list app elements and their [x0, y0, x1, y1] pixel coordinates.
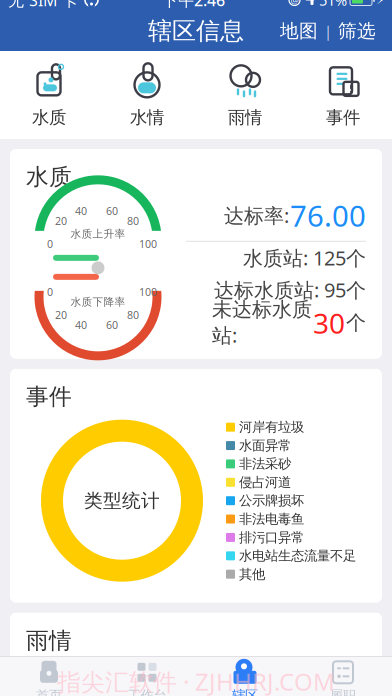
staticText: 事件	[26, 383, 72, 411]
staticText: ⚡︎	[376, 0, 384, 7]
staticText: 76.00	[290, 196, 366, 235]
staticText: 筛选	[338, 19, 376, 42]
staticText: 0	[47, 237, 53, 251]
staticText: 水质	[32, 107, 66, 128]
staticText: 个	[346, 310, 366, 335]
staticText: 水质站: 125个	[243, 244, 366, 271]
button[interactable]: 水质	[0, 51, 98, 139]
staticText: 100	[139, 237, 157, 251]
staticText: 雨情	[228, 107, 262, 128]
staticText: 80	[127, 308, 139, 322]
button[interactable]: 首页	[0, 656, 98, 696]
button[interactable]: 地图	[274, 13, 324, 48]
staticText: 非法电毒鱼	[239, 511, 304, 527]
staticText: 类型统计	[84, 489, 160, 512]
staticText: 51%	[319, 0, 347, 10]
staticText: 水电站生态流量不足	[239, 548, 356, 564]
staticText: 公示牌损坏	[239, 492, 304, 509]
staticText: 40	[75, 318, 87, 332]
staticText: 0	[47, 285, 53, 299]
staticText: 地图	[280, 19, 318, 42]
staticText: 40	[75, 204, 87, 218]
staticText: 水质上升率	[70, 227, 125, 240]
staticText: 无 SIM 卡	[8, 0, 78, 11]
staticText: 辖区	[232, 687, 258, 696]
staticText: 雨情	[26, 627, 72, 654]
staticText: |	[324, 21, 332, 41]
button[interactable]: 事件	[294, 51, 392, 139]
staticText: 水质	[26, 163, 72, 191]
staticText: 100	[139, 285, 157, 299]
staticText: 20	[55, 308, 67, 322]
staticText: 水情	[130, 107, 164, 128]
staticText: 水质下降率	[70, 295, 125, 308]
staticText: 80	[127, 214, 139, 228]
staticText: 30	[313, 304, 345, 341]
staticText: 首页	[36, 687, 62, 696]
staticText: 河岸有垃圾	[239, 419, 304, 435]
staticText: 未达标水质站:	[212, 297, 312, 348]
staticText: 其他	[239, 566, 265, 582]
staticText: 60	[106, 204, 118, 218]
button[interactable]: 雨情	[196, 51, 294, 139]
staticText: 排污口异常	[239, 529, 304, 546]
button[interactable]: 履职	[294, 656, 392, 696]
button[interactable]: 水情	[98, 51, 196, 139]
staticText: 下午2:46	[162, 0, 225, 11]
staticText: 工作台	[127, 687, 166, 696]
staticText: 侵占河道	[239, 474, 291, 490]
button[interactable]: 工作台	[98, 656, 196, 696]
staticText: 达标水质站: 95个	[214, 276, 366, 303]
staticText: 60	[106, 318, 118, 332]
button[interactable]: 辖区	[196, 656, 294, 696]
button[interactable]: 筛选	[332, 13, 382, 48]
staticText: 指尖汇软件 · ZJHHRJ.COM	[57, 666, 335, 696]
staticText: 履职	[330, 687, 356, 696]
staticText: 非法采砂	[239, 456, 291, 472]
staticText: 辖区信息	[148, 16, 244, 46]
staticText: @	[290, 0, 298, 6]
staticText: 达标率:	[224, 202, 289, 229]
staticText: 20	[55, 214, 67, 228]
staticText: 水面异常	[239, 437, 291, 454]
staticText: 事件	[326, 107, 360, 128]
